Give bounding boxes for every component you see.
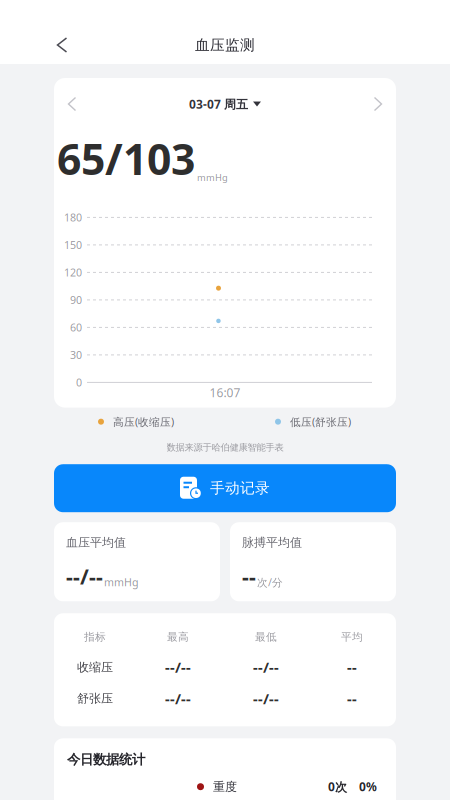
button[interactable]: Next day — [364, 90, 392, 118]
staticText: 次/分 — [257, 575, 283, 589]
staticText: 血压监测 — [195, 36, 255, 54]
staticText: 指标 — [84, 630, 106, 643]
staticText: 60 — [70, 320, 82, 334]
staticText: 0 — [76, 375, 82, 389]
staticText: --/-- — [66, 562, 103, 590]
staticText: 0% — [359, 779, 377, 795]
staticText: 手动记录 — [210, 479, 270, 497]
staticText: 03-07 周五 — [189, 96, 248, 112]
staticText: 90 — [70, 293, 82, 307]
staticText: -- — [347, 689, 357, 708]
staticText: 150 — [64, 238, 82, 252]
staticText: 16:07 — [209, 385, 240, 401]
staticText: 舒张压 — [77, 691, 113, 706]
staticText: -- — [242, 562, 256, 590]
staticText: 今日数据统计 — [67, 751, 145, 768]
staticText: --/-- — [253, 689, 279, 708]
staticText: 平均 — [341, 630, 363, 643]
staticText: --/-- — [253, 657, 279, 677]
staticText: 65/103 — [57, 130, 195, 187]
staticText: 重度 — [213, 779, 237, 794]
staticText: 血压平均值 — [66, 535, 126, 550]
staticText: --/-- — [165, 657, 191, 677]
staticText: 数据来源于哈伯健康智能手表 — [166, 442, 283, 453]
staticText: 低压(舒张压) — [290, 415, 351, 429]
staticText: 脉搏平均值 — [242, 535, 302, 550]
staticText: --/-- — [165, 689, 191, 708]
button[interactable]: 手动记录 — [54, 464, 396, 512]
staticText: 收缩压 — [77, 660, 113, 674]
staticText: 180 — [64, 210, 82, 224]
staticText: 30 — [70, 348, 82, 362]
staticText: -- — [347, 657, 357, 677]
staticText: 高压(收缩压) — [113, 415, 174, 429]
button[interactable]: Previous day — [58, 90, 86, 118]
button[interactable]: Back — [46, 29, 78, 61]
staticText: 120 — [64, 265, 82, 279]
staticText: 最低 — [255, 630, 277, 643]
staticText: 最高 — [167, 630, 189, 643]
staticText: mmHg — [197, 171, 228, 184]
staticText: mmHg — [104, 575, 139, 589]
staticText: 0次 — [328, 779, 347, 795]
